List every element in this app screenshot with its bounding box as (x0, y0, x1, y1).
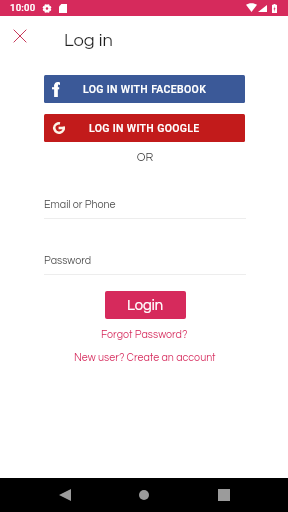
staticText: Email or Phone (44, 199, 116, 210)
staticText: 10:00 (10, 2, 36, 13)
button[interactable]: Forgot Password? (0, 329, 288, 340)
button[interactable]: LOG IN WITH GOOGLE (44, 114, 245, 142)
staticText: Login (127, 298, 164, 313)
button[interactable]: Close (7, 23, 32, 48)
button[interactable]: Home (139, 490, 149, 500)
button[interactable]: Back (59, 489, 71, 501)
staticText: OR (1, 151, 288, 163)
button[interactable]: New user? Create an account (1, 352, 288, 363)
staticText: Password (44, 255, 92, 266)
staticText: New user? Create an account (74, 352, 216, 363)
staticText: LOG IN WITH FACEBOOK (83, 83, 207, 95)
button[interactable]: LOG IN WITH FACEBOOK (44, 75, 245, 103)
staticText: Forgot Password? (101, 329, 188, 340)
staticText: Log in (64, 31, 113, 50)
staticText: LOG IN WITH GOOGLE (89, 122, 200, 134)
button[interactable]: Login (105, 291, 186, 319)
